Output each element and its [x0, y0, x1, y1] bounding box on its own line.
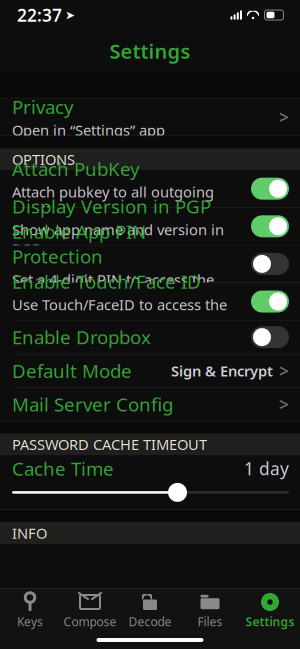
button[interactable]: Privacy	[0, 99, 300, 136]
button[interactable]: Enable Touch/Face ID	[0, 283, 300, 320]
staticText: Sign & Encrypt	[171, 361, 273, 380]
button[interactable]: Settings	[240, 588, 300, 633]
staticText: Settings	[245, 613, 294, 629]
staticText: Cache Time	[12, 456, 114, 481]
button[interactable]: Enable Dropbox	[0, 321, 300, 354]
staticText: Attach PubKey	[12, 156, 140, 181]
button[interactable]: Default Mode	[0, 354, 300, 387]
staticText: Display Version in PGP	[12, 194, 211, 219]
staticText: INFO	[12, 523, 47, 543]
staticText: Decode	[128, 613, 171, 629]
button[interactable]: Display Version in PGP	[0, 208, 300, 245]
staticText: Mail Server Config	[12, 392, 173, 417]
staticText: Show app name and version in PGP.	[12, 220, 224, 259]
button[interactable]: Settings	[0, 30, 300, 72]
staticText: Enable Dropbox	[12, 325, 151, 349]
staticText: 22:37	[17, 3, 62, 26]
staticText: Keys	[17, 613, 43, 629]
staticText: Open in “Settings” app	[12, 120, 165, 140]
staticText: Default Mode	[12, 358, 132, 383]
staticText: OPTIONS	[12, 149, 75, 169]
staticText: PASSWORD CACHE TIMEOUT	[12, 435, 207, 454]
button[interactable]: Decode	[120, 588, 180, 633]
staticText: Attach pubkey to all outgoing email	[12, 182, 214, 221]
staticText: Compose	[63, 613, 116, 629]
button[interactable]: Keys	[0, 588, 60, 633]
staticText: ➤	[65, 8, 75, 22]
staticText: Set a 4-digit PIN to access the app	[12, 270, 214, 309]
staticText: Enable App PIN Protection	[12, 219, 146, 269]
button[interactable]: Files	[180, 588, 240, 633]
staticText: Use Touch/FaceID to access the app	[12, 295, 227, 334]
staticText: >	[279, 106, 289, 129]
staticText: Settings	[109, 38, 190, 64]
staticText: >	[279, 359, 289, 382]
staticText: Enable Touch/Face ID	[12, 269, 201, 294]
button[interactable]: Enable App PIN Protection	[0, 245, 300, 282]
button[interactable]: Mail Server Config	[0, 388, 300, 421]
button[interactable]: Compose	[60, 588, 120, 633]
staticText: >	[279, 393, 289, 416]
button[interactable]: Attach PubKey	[0, 170, 300, 207]
staticText: Files	[197, 613, 222, 629]
staticText: Privacy	[12, 94, 74, 119]
staticText: 1 day	[244, 457, 289, 480]
